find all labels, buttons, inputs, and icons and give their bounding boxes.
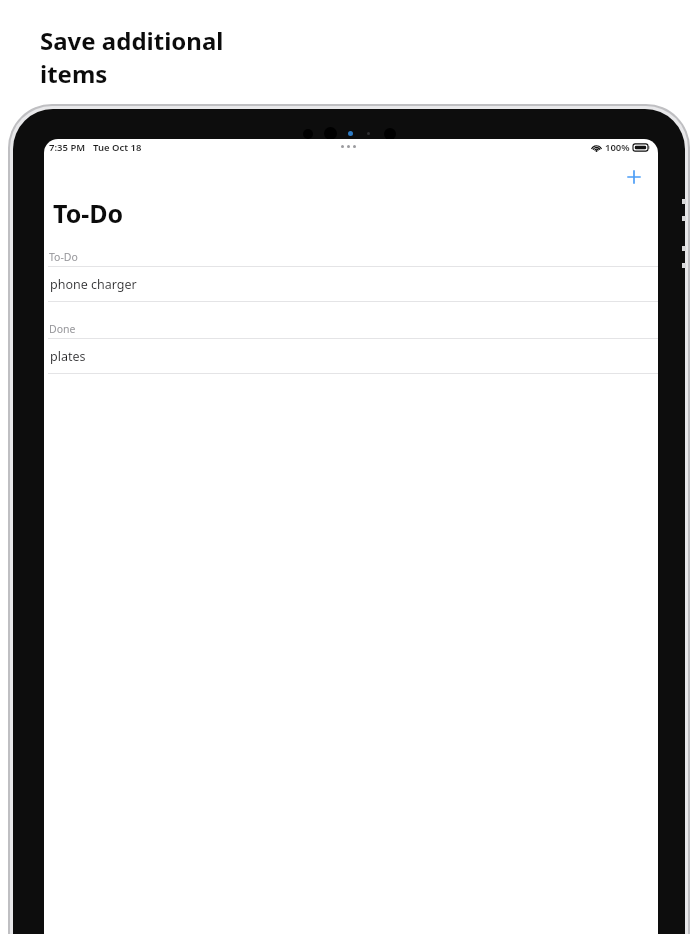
staticText: Tue Oct 18: [93, 141, 142, 154]
staticText: 7:35 PM: [49, 141, 86, 154]
staticText: plates: [50, 348, 86, 365]
staticText: 100%: [605, 141, 630, 154]
button[interactable]: phone charger: [44, 267, 658, 301]
button[interactable]: Add item: [616, 159, 652, 195]
staticText: To-Do: [53, 196, 124, 230]
staticText: phone charger: [50, 276, 137, 293]
staticText: Done: [49, 322, 76, 336]
staticText: items: [40, 57, 108, 90]
staticText: To-Do: [49, 250, 78, 264]
staticText: Save additional: [40, 24, 224, 57]
button[interactable]: plates: [44, 339, 658, 373]
